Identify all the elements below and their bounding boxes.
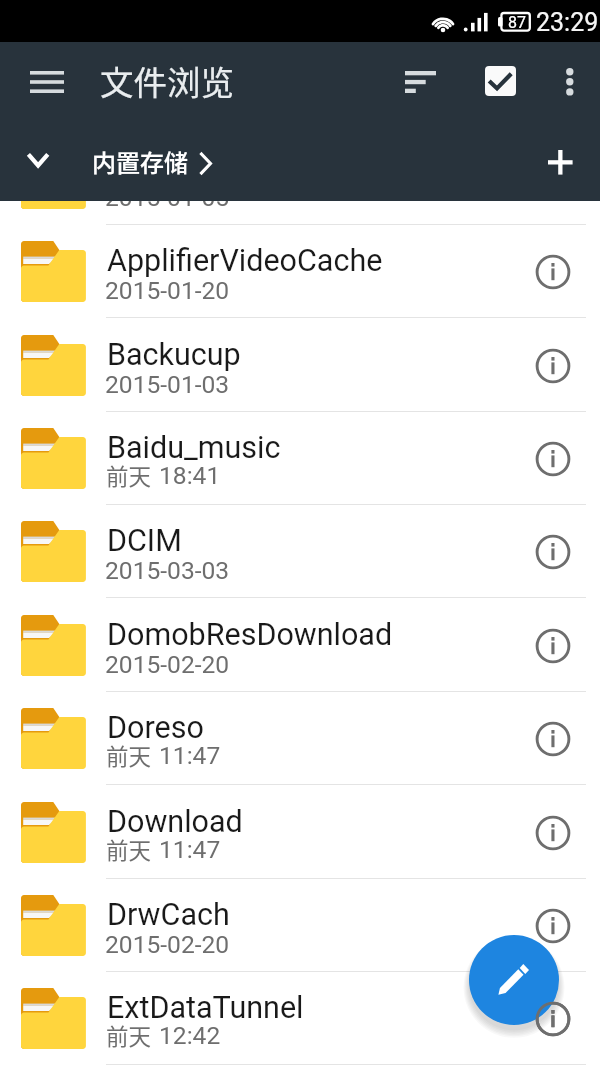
button[interactable]: Info bbox=[521, 707, 585, 771]
button[interactable]: Menu bbox=[9, 51, 83, 123]
staticText: 文件浏览 bbox=[100, 56, 234, 105]
staticText: 前天 bbox=[106, 459, 152, 492]
staticText: 2015-03-03 bbox=[105, 556, 230, 585]
button[interactable]: Info bbox=[521, 240, 585, 304]
staticText: Backucup bbox=[107, 337, 507, 373]
button[interactable]: Backucup bbox=[0, 319, 600, 412]
staticText: 2015-02-20 bbox=[105, 930, 230, 959]
button[interactable]: Info bbox=[521, 334, 585, 398]
button[interactable]: Doreso bbox=[0, 692, 600, 785]
staticText: DomobResDownload bbox=[107, 617, 507, 653]
staticText: 前天 bbox=[106, 833, 152, 866]
button[interactable]: Info bbox=[521, 801, 585, 865]
staticText: 2015-01-05 bbox=[105, 201, 230, 212]
button[interactable]: Baidu_music bbox=[0, 412, 600, 505]
button[interactable]: DomobResDownload bbox=[0, 599, 600, 692]
button[interactable]: Collapse bbox=[6, 133, 74, 199]
button[interactable]: DCIM bbox=[0, 505, 600, 598]
staticText: DCIM bbox=[107, 523, 507, 559]
button[interactable]: Android bbox=[0, 201, 600, 225]
button[interactable]: More options bbox=[546, 48, 594, 124]
staticText: 11:47 bbox=[159, 741, 221, 770]
button[interactable]: ExtDataTunnel bbox=[0, 972, 600, 1065]
button[interactable]: Info bbox=[521, 520, 585, 584]
staticText: 11:47 bbox=[159, 835, 221, 864]
button[interactable]: ApplifierVideoCache bbox=[0, 225, 600, 318]
staticText: 内置存储 bbox=[92, 144, 188, 179]
button[interactable]: Sort bbox=[385, 48, 449, 124]
button[interactable]: Info bbox=[521, 987, 585, 1051]
staticText: Doreso bbox=[107, 710, 507, 746]
staticText: 2015-01-20 bbox=[105, 276, 230, 305]
staticText: ExtDataTunnel bbox=[107, 990, 507, 1026]
staticText: Baidu_music bbox=[107, 430, 507, 466]
button[interactable]: Info bbox=[521, 614, 585, 678]
staticText: 前天 bbox=[106, 739, 152, 772]
staticText: 2015-02-20 bbox=[105, 650, 230, 679]
button[interactable]: DrwCach bbox=[0, 879, 600, 972]
staticText: 23:29 bbox=[536, 8, 599, 37]
staticText: DrwCach bbox=[107, 897, 507, 933]
button[interactable]: New bbox=[469, 935, 559, 1025]
staticText: ApplifierVideoCache bbox=[107, 243, 507, 279]
staticText: 前天 bbox=[106, 1019, 152, 1052]
staticText: 87 bbox=[508, 13, 526, 32]
staticText: Download bbox=[107, 804, 507, 840]
button[interactable]: Add bbox=[528, 131, 592, 201]
button[interactable]: Select all bbox=[468, 48, 532, 124]
staticText: 12:42 bbox=[159, 1021, 221, 1050]
staticText: 2015-01-03 bbox=[105, 370, 230, 399]
button[interactable]: Download bbox=[0, 786, 600, 879]
button[interactable]: Info bbox=[521, 427, 585, 491]
button[interactable]: Info bbox=[521, 894, 585, 958]
staticText: 18:41 bbox=[159, 461, 221, 490]
